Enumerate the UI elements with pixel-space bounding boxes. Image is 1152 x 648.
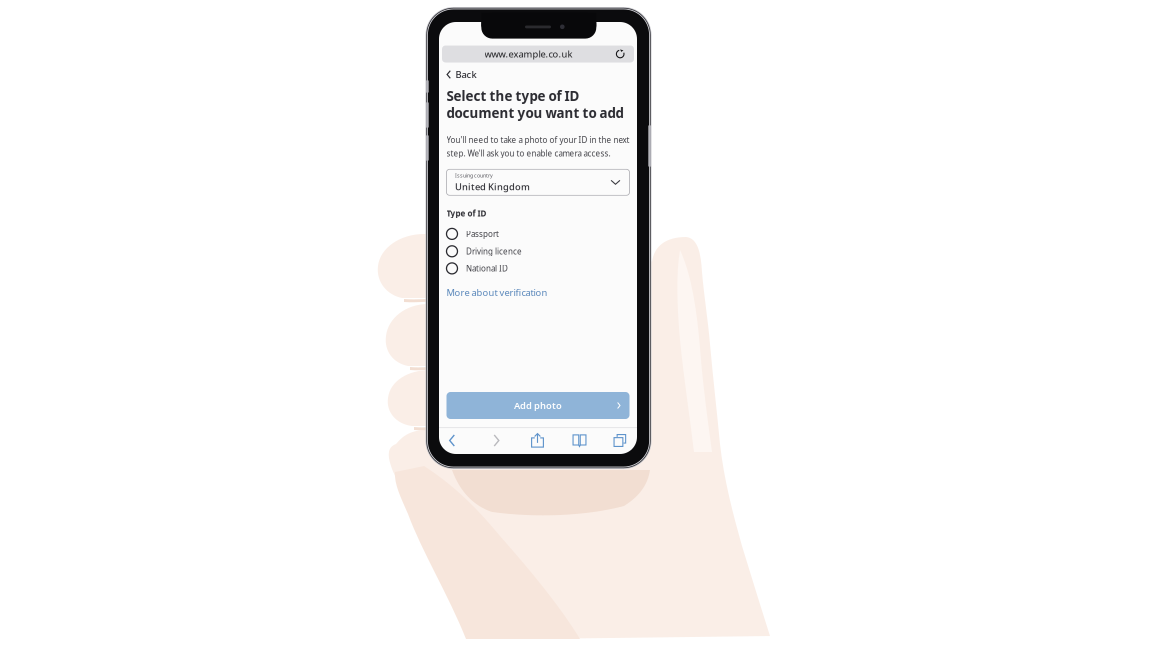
button[interactable]: Tabs [602, 427, 638, 453]
button[interactable]: Back [434, 427, 470, 453]
staticText: Back [455, 68, 476, 81]
button[interactable]: Bookmarks [561, 427, 597, 453]
button[interactable]: More about verification [446, 286, 547, 299]
button[interactable]: Back [446, 66, 492, 82]
button[interactable]: National ID [446, 261, 629, 276]
button[interactable]: Add photo [446, 392, 629, 419]
staticText: www.example.co.uk [484, 48, 572, 60]
staticText: You'll need to take a photo of your ID i… [446, 134, 629, 145]
button[interactable]: Passport [446, 226, 629, 241]
staticText: National ID [466, 263, 508, 274]
staticText: United Kingdom [455, 180, 530, 193]
staticText: Add photo [514, 399, 562, 412]
staticText: Driving licence [466, 246, 522, 257]
staticText: Passport [466, 229, 499, 239]
staticText: Issuing country [455, 172, 493, 179]
staticText: document you want to add [446, 104, 623, 122]
button[interactable]: Driving licence [446, 244, 629, 259]
button[interactable]: Issuing country [446, 169, 629, 195]
staticText: step. We'll ask you to enable camera acc… [446, 148, 610, 159]
staticText: Select the type of ID [446, 87, 579, 105]
button[interactable]: Forward [478, 427, 514, 453]
button[interactable]: Share [519, 427, 555, 453]
staticText: Type of ID [446, 208, 486, 219]
staticText: More about verification [446, 286, 547, 299]
